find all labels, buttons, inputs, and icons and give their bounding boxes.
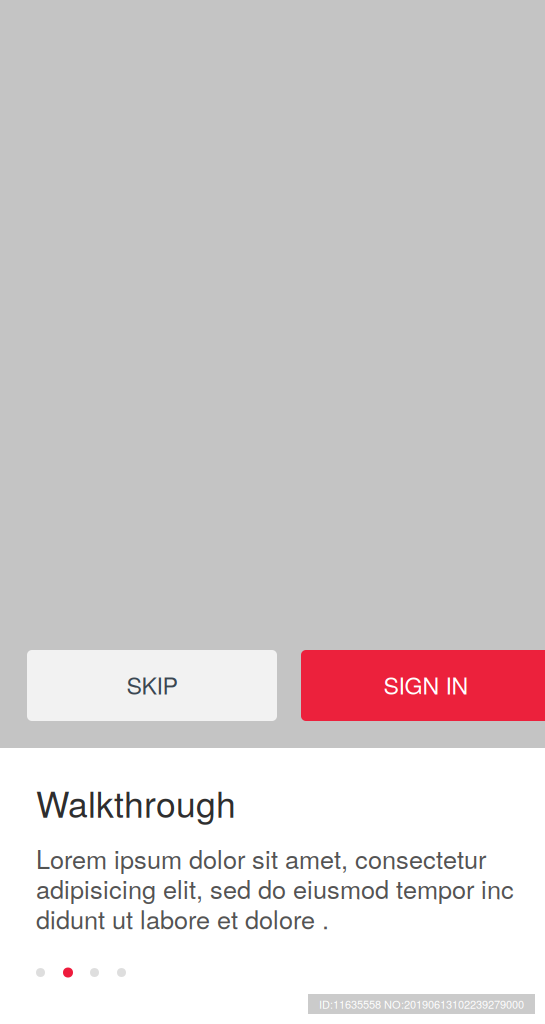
staticText: Lorem ipsum dolor sit amet, consectetur … [36,840,514,936]
button[interactable]: Page 2 [63,967,73,977]
button[interactable]: Page 1 [36,968,45,977]
button[interactable]: SKIP [27,650,277,721]
button[interactable]: SIGN IN [301,650,545,721]
button[interactable]: Page 4 [117,968,126,977]
staticText: SKIP [126,668,177,701]
staticText: ID:11635558 NO:20190613102239279000 [319,996,524,1012]
button[interactable]: Page 3 [90,968,99,977]
staticText: SIGN IN [383,668,468,701]
staticText: Walkthrough [36,777,236,828]
